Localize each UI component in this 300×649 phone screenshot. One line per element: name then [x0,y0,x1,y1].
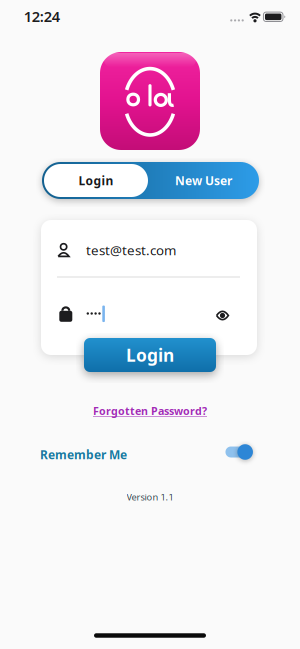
staticText: New User [175,172,232,188]
button[interactable]: Login [44,164,148,197]
staticText: Login [78,172,113,188]
button[interactable]: Show password [212,307,232,323]
button[interactable]: Email [49,230,249,270]
button[interactable]: New User [148,162,259,199]
button[interactable]: Password [49,294,209,334]
staticText: Remember Me [40,446,127,462]
button[interactable]: Login [84,338,216,372]
button[interactable]: Remember Me [225,444,253,460]
staticText: 12:24 [24,7,60,26]
staticText: Login [126,343,174,366]
staticText: test@test.com [86,241,176,259]
button[interactable]: Forgotten Password? [93,404,207,418]
staticText: Forgotten Password? [93,404,207,418]
staticText: Version 1.1 [126,491,173,503]
